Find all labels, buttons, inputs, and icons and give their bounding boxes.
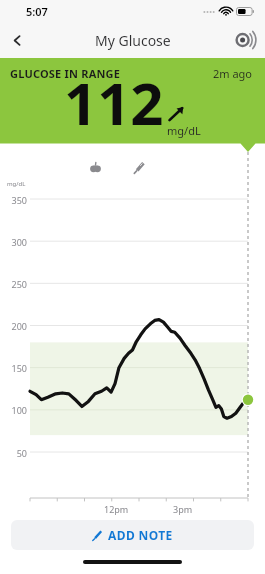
button[interactable]: Back xyxy=(0,23,34,57)
staticText: 12pm xyxy=(104,503,129,515)
staticText: 5:07 xyxy=(26,4,48,19)
staticText: 3pm xyxy=(173,503,193,515)
button[interactable]: Scan sensor xyxy=(230,25,260,55)
staticText: mg/dL xyxy=(7,180,26,188)
staticText: GLUCOSE IN RANGE xyxy=(10,66,121,81)
button[interactable]: Food log entry xyxy=(85,157,105,177)
staticText: 2m ago xyxy=(213,66,253,81)
staticText: 150 xyxy=(11,362,27,374)
staticText: 250 xyxy=(11,278,27,290)
staticText: 200 xyxy=(11,320,27,332)
staticText: 350 xyxy=(11,194,27,206)
button[interactable]: Insulin log entry xyxy=(129,157,149,177)
staticText: 112 xyxy=(64,63,164,142)
staticText: 100 xyxy=(11,404,27,416)
staticText: 300 xyxy=(11,236,27,248)
staticText: ADD NOTE xyxy=(108,527,173,543)
staticText: 50 xyxy=(16,447,27,459)
button[interactable]: ADD NOTE xyxy=(11,520,254,550)
staticText: My Glucose xyxy=(95,31,171,50)
staticText: mg/dL xyxy=(167,123,201,138)
